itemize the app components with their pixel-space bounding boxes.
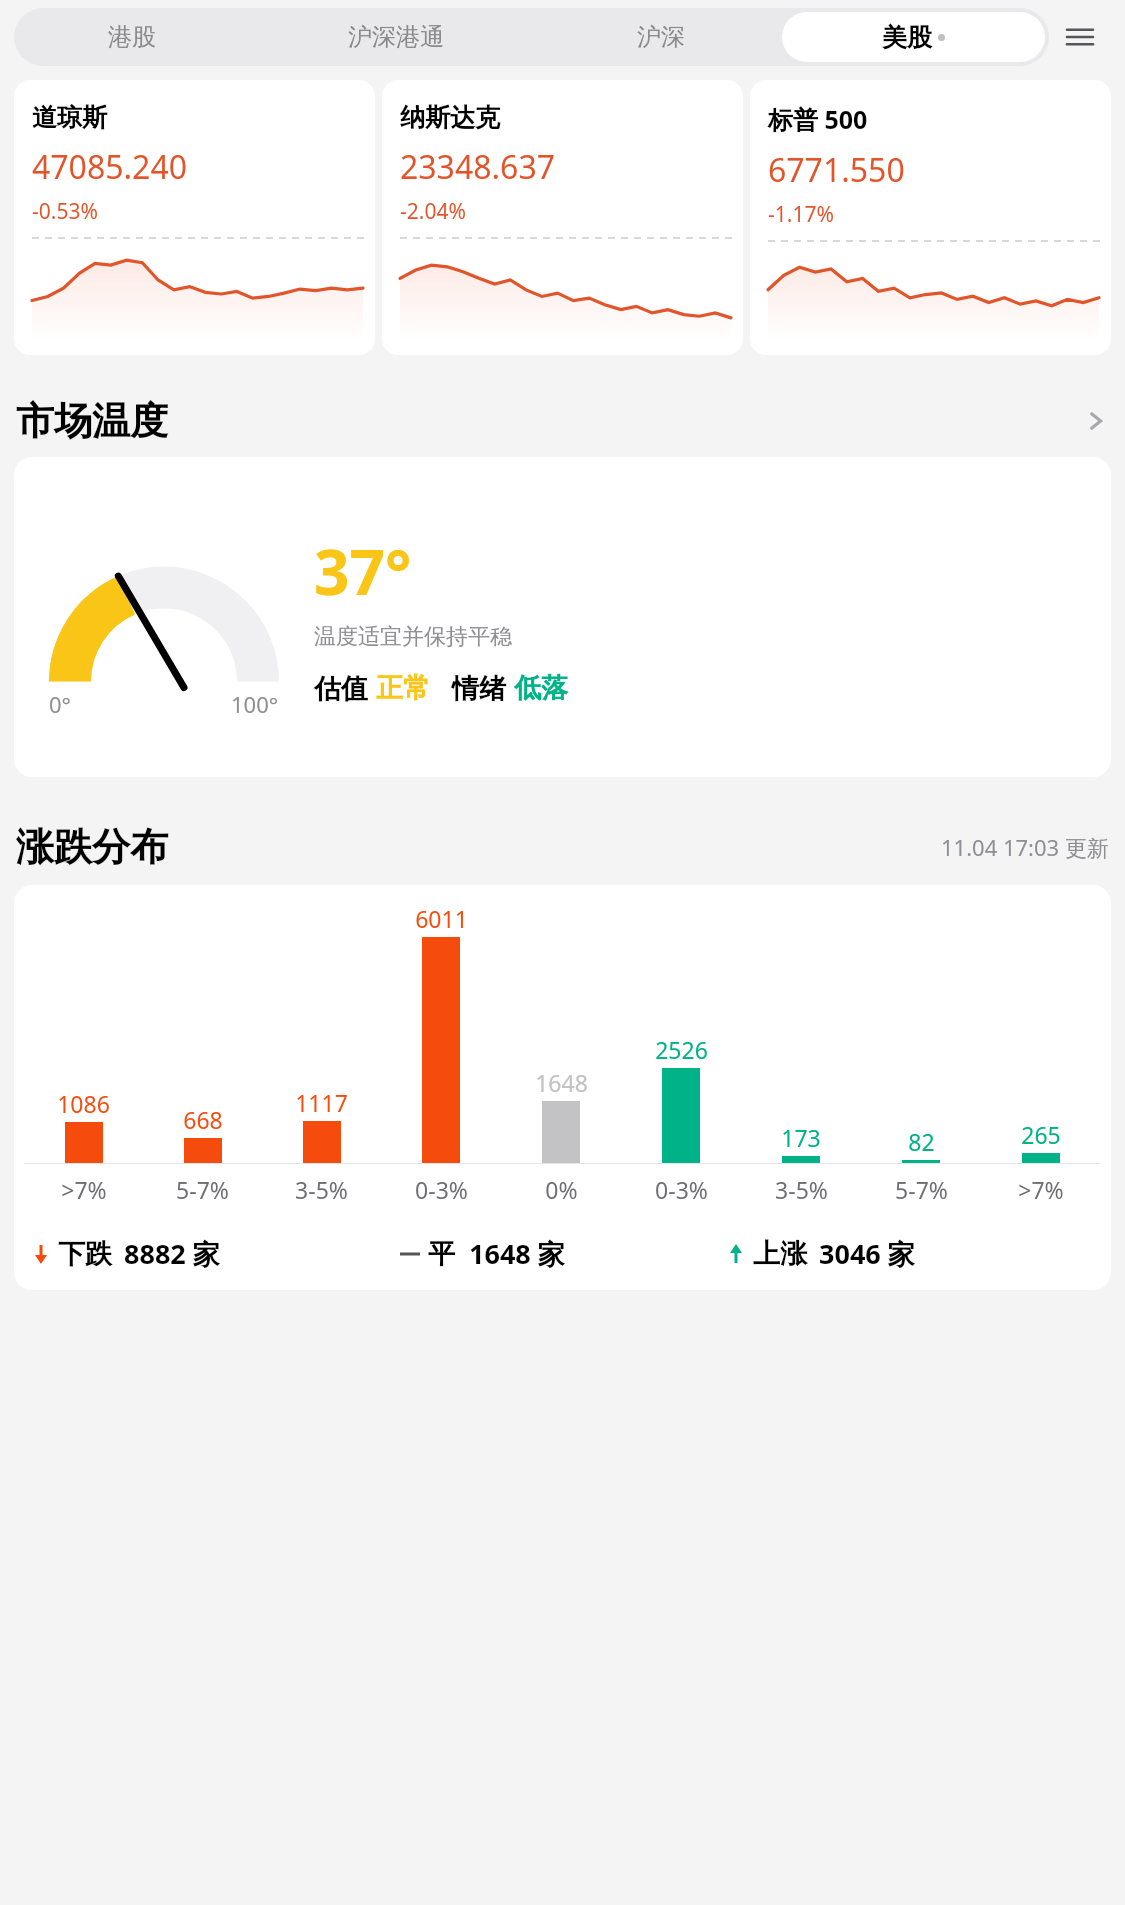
staticText: 6771.550 (768, 148, 905, 192)
staticText: 82 (908, 1126, 935, 1157)
button[interactable]: 菜单 (1049, 8, 1111, 66)
staticText: 纳斯达克 (400, 102, 500, 133)
staticText: -2.04% (400, 197, 466, 226)
staticText: 沪深港通 (348, 22, 444, 52)
staticText: -0.53% (32, 197, 98, 226)
staticText: 道琼斯 (32, 102, 107, 133)
staticText: 1648 (535, 1067, 588, 1098)
staticText: 8882 家 (124, 1235, 220, 1272)
staticText: 37° (314, 529, 412, 613)
staticText: 涨跌分布 (16, 823, 168, 871)
staticText: 2526 (655, 1034, 708, 1065)
staticText: >7% (1018, 1174, 1064, 1205)
staticText: 平 (428, 1237, 455, 1271)
staticText: 5-7% (895, 1174, 948, 1205)
staticText: 市场温度 (16, 397, 168, 445)
button[interactable]: 下跌 (30, 1235, 400, 1272)
button[interactable]: 港股 (14, 8, 249, 66)
button[interactable]: 上涨 (725, 1235, 1095, 1272)
staticText: 1648 家 (469, 1235, 565, 1272)
staticText: 6011 (415, 903, 468, 934)
staticText: 0° (49, 689, 72, 719)
staticText: 估值 (314, 669, 376, 706)
staticText: 美股 (882, 22, 932, 53)
staticText: 港股 (108, 22, 156, 52)
button[interactable]: 沪深 (543, 8, 778, 66)
staticText: 3046 家 (819, 1235, 915, 1272)
staticText: 3-5% (775, 1174, 828, 1205)
staticText: 标普 500 (768, 102, 868, 136)
staticText: >7% (61, 1174, 107, 1205)
button[interactable]: 平 (400, 1235, 725, 1272)
staticText: 11.04 17:03 更新 (941, 832, 1109, 862)
staticText: 情绪 (452, 669, 514, 706)
button[interactable]: 1086 (14, 885, 1111, 1290)
button[interactable]: 涨跌分布 (16, 823, 1109, 871)
staticText: 5-7% (176, 1174, 229, 1205)
staticText: 1086 (57, 1088, 110, 1119)
staticText: 0% (545, 1174, 578, 1205)
staticText: 低落 (514, 671, 568, 705)
staticText: 正常 (376, 671, 430, 705)
staticText: 0-3% (655, 1174, 708, 1205)
button[interactable]: 沪深港通 (249, 8, 543, 66)
staticText: 265 (1021, 1119, 1061, 1150)
staticText: 668 (183, 1104, 223, 1135)
staticText: 上涨 (753, 1237, 807, 1271)
button[interactable]: 市场温度 (16, 397, 1109, 445)
staticText: -1.17% (768, 200, 834, 229)
staticText: 173 (781, 1122, 821, 1153)
staticText: 23348.637 (400, 145, 556, 189)
staticText: 沪深 (637, 22, 685, 52)
staticText: 下跌 (58, 1237, 112, 1271)
staticText: 温度适宜并保持平稳 (314, 623, 512, 651)
staticText: 1117 (295, 1087, 348, 1118)
button[interactable]: 0° (14, 457, 1111, 777)
button[interactable]: 道琼斯 (14, 80, 375, 355)
button[interactable]: 纳斯达克 (382, 80, 743, 355)
staticText: 3-5% (295, 1174, 348, 1205)
staticText: 100° (231, 689, 279, 719)
button[interactable]: 美股 (782, 12, 1045, 62)
staticText: 47085.240 (32, 145, 188, 189)
staticText: 0-3% (415, 1174, 468, 1205)
button[interactable]: 标普 500 (750, 80, 1111, 355)
